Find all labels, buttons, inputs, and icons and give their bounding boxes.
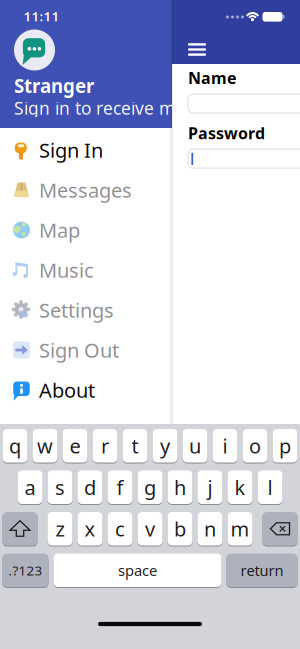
button[interactable]: c [107, 511, 132, 546]
button[interactable]: Name text field [188, 94, 300, 113]
staticText: return [240, 560, 283, 580]
button[interactable]: d [77, 470, 102, 504]
button[interactable]: m [227, 511, 252, 546]
button[interactable]: g [137, 470, 162, 504]
staticText: Password [188, 122, 265, 144]
staticText: d [84, 474, 96, 501]
staticText: k [234, 474, 245, 501]
staticText: j [207, 474, 212, 501]
staticText: Map [39, 217, 80, 243]
staticText: x [84, 515, 95, 542]
staticText: p [279, 432, 291, 459]
button[interactable]: l [257, 470, 282, 504]
staticText: z [55, 515, 64, 542]
button[interactable]: u [182, 428, 207, 463]
staticText: t [131, 432, 138, 459]
button[interactable]: Sign Out [0, 330, 172, 370]
button[interactable]: j [197, 470, 222, 504]
button[interactable]: e [62, 428, 87, 463]
staticText: c [115, 515, 125, 542]
staticText: q [9, 432, 21, 459]
button[interactable]: o [242, 428, 267, 463]
staticText: Name [188, 67, 237, 88]
staticText: b [174, 515, 186, 542]
staticText: Sign In [39, 137, 103, 163]
staticText: u [189, 432, 201, 459]
staticText: Sign Out [39, 337, 119, 363]
staticText: Stranger [14, 73, 94, 98]
button[interactable]: h [167, 470, 192, 504]
button[interactable]: x [77, 511, 102, 546]
button[interactable]: f [107, 470, 132, 504]
staticText: e [69, 432, 80, 459]
staticText: Sign in to receive messages [14, 96, 240, 119]
button[interactable]: k [227, 470, 252, 504]
button[interactable]: q [2, 428, 27, 463]
button[interactable]: Password text field [188, 149, 300, 168]
button[interactable]: return [226, 553, 297, 587]
button[interactable]: p [272, 428, 297, 463]
staticText: Messages [39, 177, 132, 203]
staticText: f [116, 474, 123, 501]
staticText: s [55, 474, 65, 501]
staticText: g [144, 474, 156, 501]
button[interactable]: s [47, 470, 72, 504]
button[interactable]: Menu [182, 35, 212, 63]
staticText: About [39, 377, 95, 403]
button[interactable]: space [53, 553, 221, 587]
staticText: i [222, 432, 227, 459]
staticText: m [230, 515, 249, 542]
button[interactable]: Delete [262, 511, 297, 546]
button[interactable]: Messages [0, 170, 172, 210]
staticText: r [101, 432, 109, 459]
staticText: .?123 [8, 561, 42, 579]
button[interactable]: r [92, 428, 117, 463]
staticText: w [37, 432, 53, 459]
button[interactable]: n [197, 511, 222, 546]
staticText: a [24, 474, 35, 501]
button[interactable]: Music [0, 250, 172, 290]
staticText: 11:11 [23, 7, 59, 25]
staticText: l [267, 474, 272, 501]
staticText: space [118, 560, 157, 580]
button[interactable]: Shift [2, 511, 37, 546]
staticText: Music [39, 257, 94, 283]
staticText: n [204, 515, 216, 542]
button[interactable]: z [47, 511, 72, 546]
button[interactable]: About [0, 370, 172, 410]
staticText: v [145, 515, 155, 542]
button[interactable]: t [122, 428, 147, 463]
button[interactable]: Map [0, 210, 172, 250]
button[interactable]: a [17, 470, 42, 504]
staticText: Settings [39, 297, 114, 323]
button[interactable]: i [212, 428, 237, 463]
staticText: h [174, 474, 186, 501]
button[interactable]: b [167, 511, 192, 546]
button[interactable]: Sign In [0, 130, 172, 170]
button[interactable]: .?123 [2, 553, 48, 587]
button[interactable]: v [137, 511, 162, 546]
staticText: o [249, 432, 261, 459]
button[interactable]: y [152, 428, 177, 463]
staticText: y [160, 432, 170, 459]
button[interactable]: w [32, 428, 57, 463]
button[interactable]: Settings [0, 290, 172, 330]
